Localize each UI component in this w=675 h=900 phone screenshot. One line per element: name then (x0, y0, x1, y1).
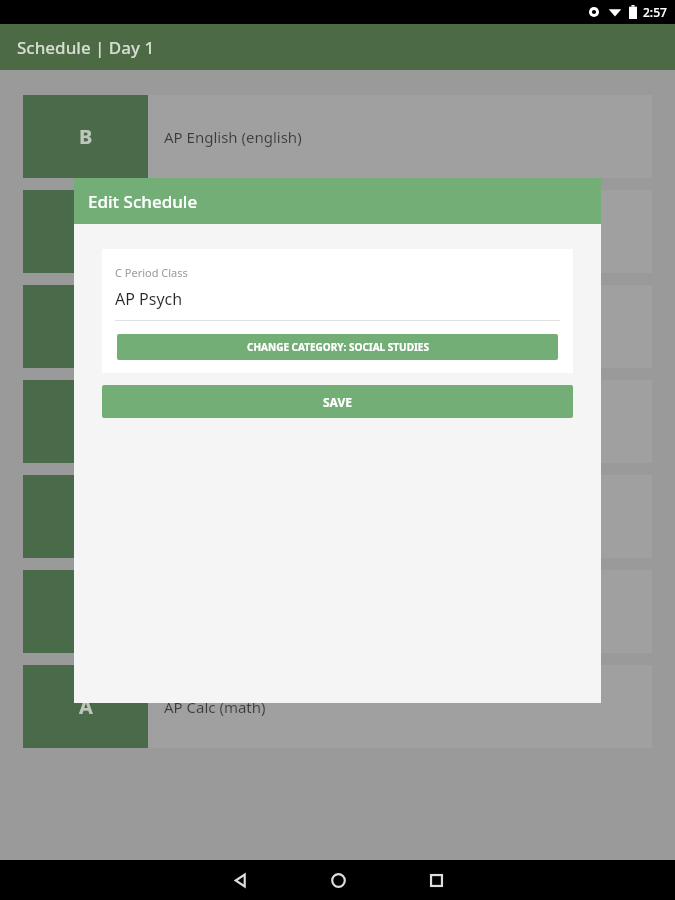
staticText: A (79, 693, 93, 720)
staticText: AP English (english) (164, 127, 302, 147)
staticText: SAVE (323, 394, 352, 410)
staticText: Schedule | Day 1 (17, 36, 155, 59)
button[interactable]: SAVE (102, 385, 573, 418)
button[interactable]: C Period Class (102, 249, 573, 320)
button[interactable]: CHANGE CATEGORY: SOCIAL STUDIES (117, 334, 558, 360)
button[interactable]: Home (308, 860, 368, 900)
button[interactable] (23, 285, 652, 368)
staticText: Edit Schedule (88, 190, 198, 213)
button[interactable]: A (23, 665, 652, 748)
staticText: AP Psych (115, 288, 183, 310)
staticText: B (79, 123, 93, 150)
button[interactable]: Back (210, 860, 270, 900)
staticText: 2:57 (643, 4, 667, 20)
staticText: CHANGE CATEGORY: SOCIAL STUDIES (247, 340, 429, 354)
staticText: AP Calc (math) (164, 697, 266, 717)
button[interactable]: B (23, 95, 652, 178)
button[interactable]: Recent apps (406, 860, 466, 900)
button[interactable] (23, 190, 652, 273)
button[interactable] (23, 380, 652, 463)
button[interactable] (23, 570, 652, 653)
button[interactable] (23, 475, 652, 558)
staticText: C Period Class (115, 265, 188, 280)
